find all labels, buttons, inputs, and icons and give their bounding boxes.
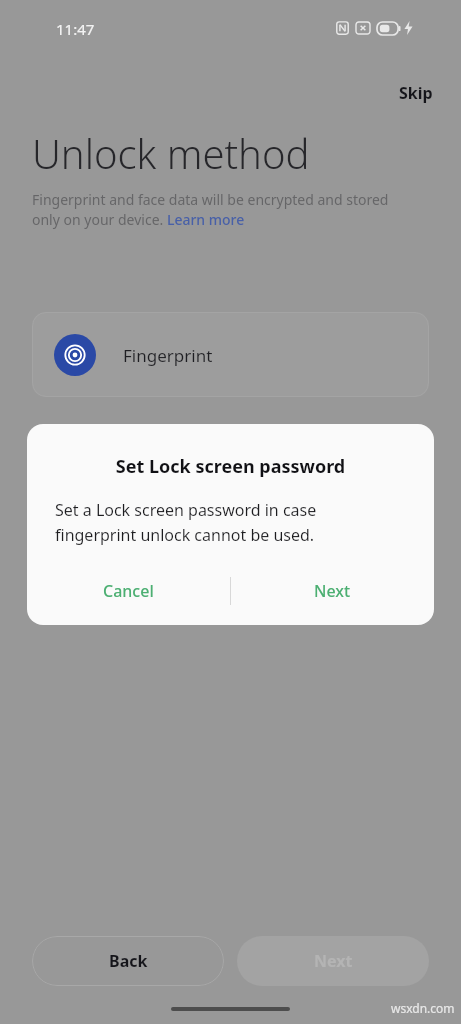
staticText: wsxdn.com: [391, 1000, 455, 1016]
staticText: Cancel: [103, 580, 154, 602]
staticText: Next: [314, 580, 351, 602]
staticText: Unlock method: [32, 126, 310, 180]
staticText: Next: [314, 950, 353, 972]
staticText: 11:47: [56, 19, 95, 39]
staticText: Set Lock screen password: [27, 454, 434, 479]
staticText: Set a Lock screen password in case finge…: [55, 499, 400, 545]
button[interactable]: Cancel: [27, 567, 230, 615]
button[interactable]: Fingerprint: [32, 312, 429, 397]
staticText: Back: [109, 950, 148, 972]
staticText: Fingerprint: [123, 344, 213, 367]
staticText: Skip: [399, 82, 433, 104]
button[interactable]: Next: [231, 567, 434, 615]
button[interactable]: Back: [32, 936, 224, 986]
button[interactable]: Skip: [393, 79, 439, 107]
button[interactable]: Next: [237, 936, 429, 986]
staticText: Fingerprint and face data will be encryp…: [32, 190, 408, 230]
other: Home: [171, 1007, 290, 1011]
